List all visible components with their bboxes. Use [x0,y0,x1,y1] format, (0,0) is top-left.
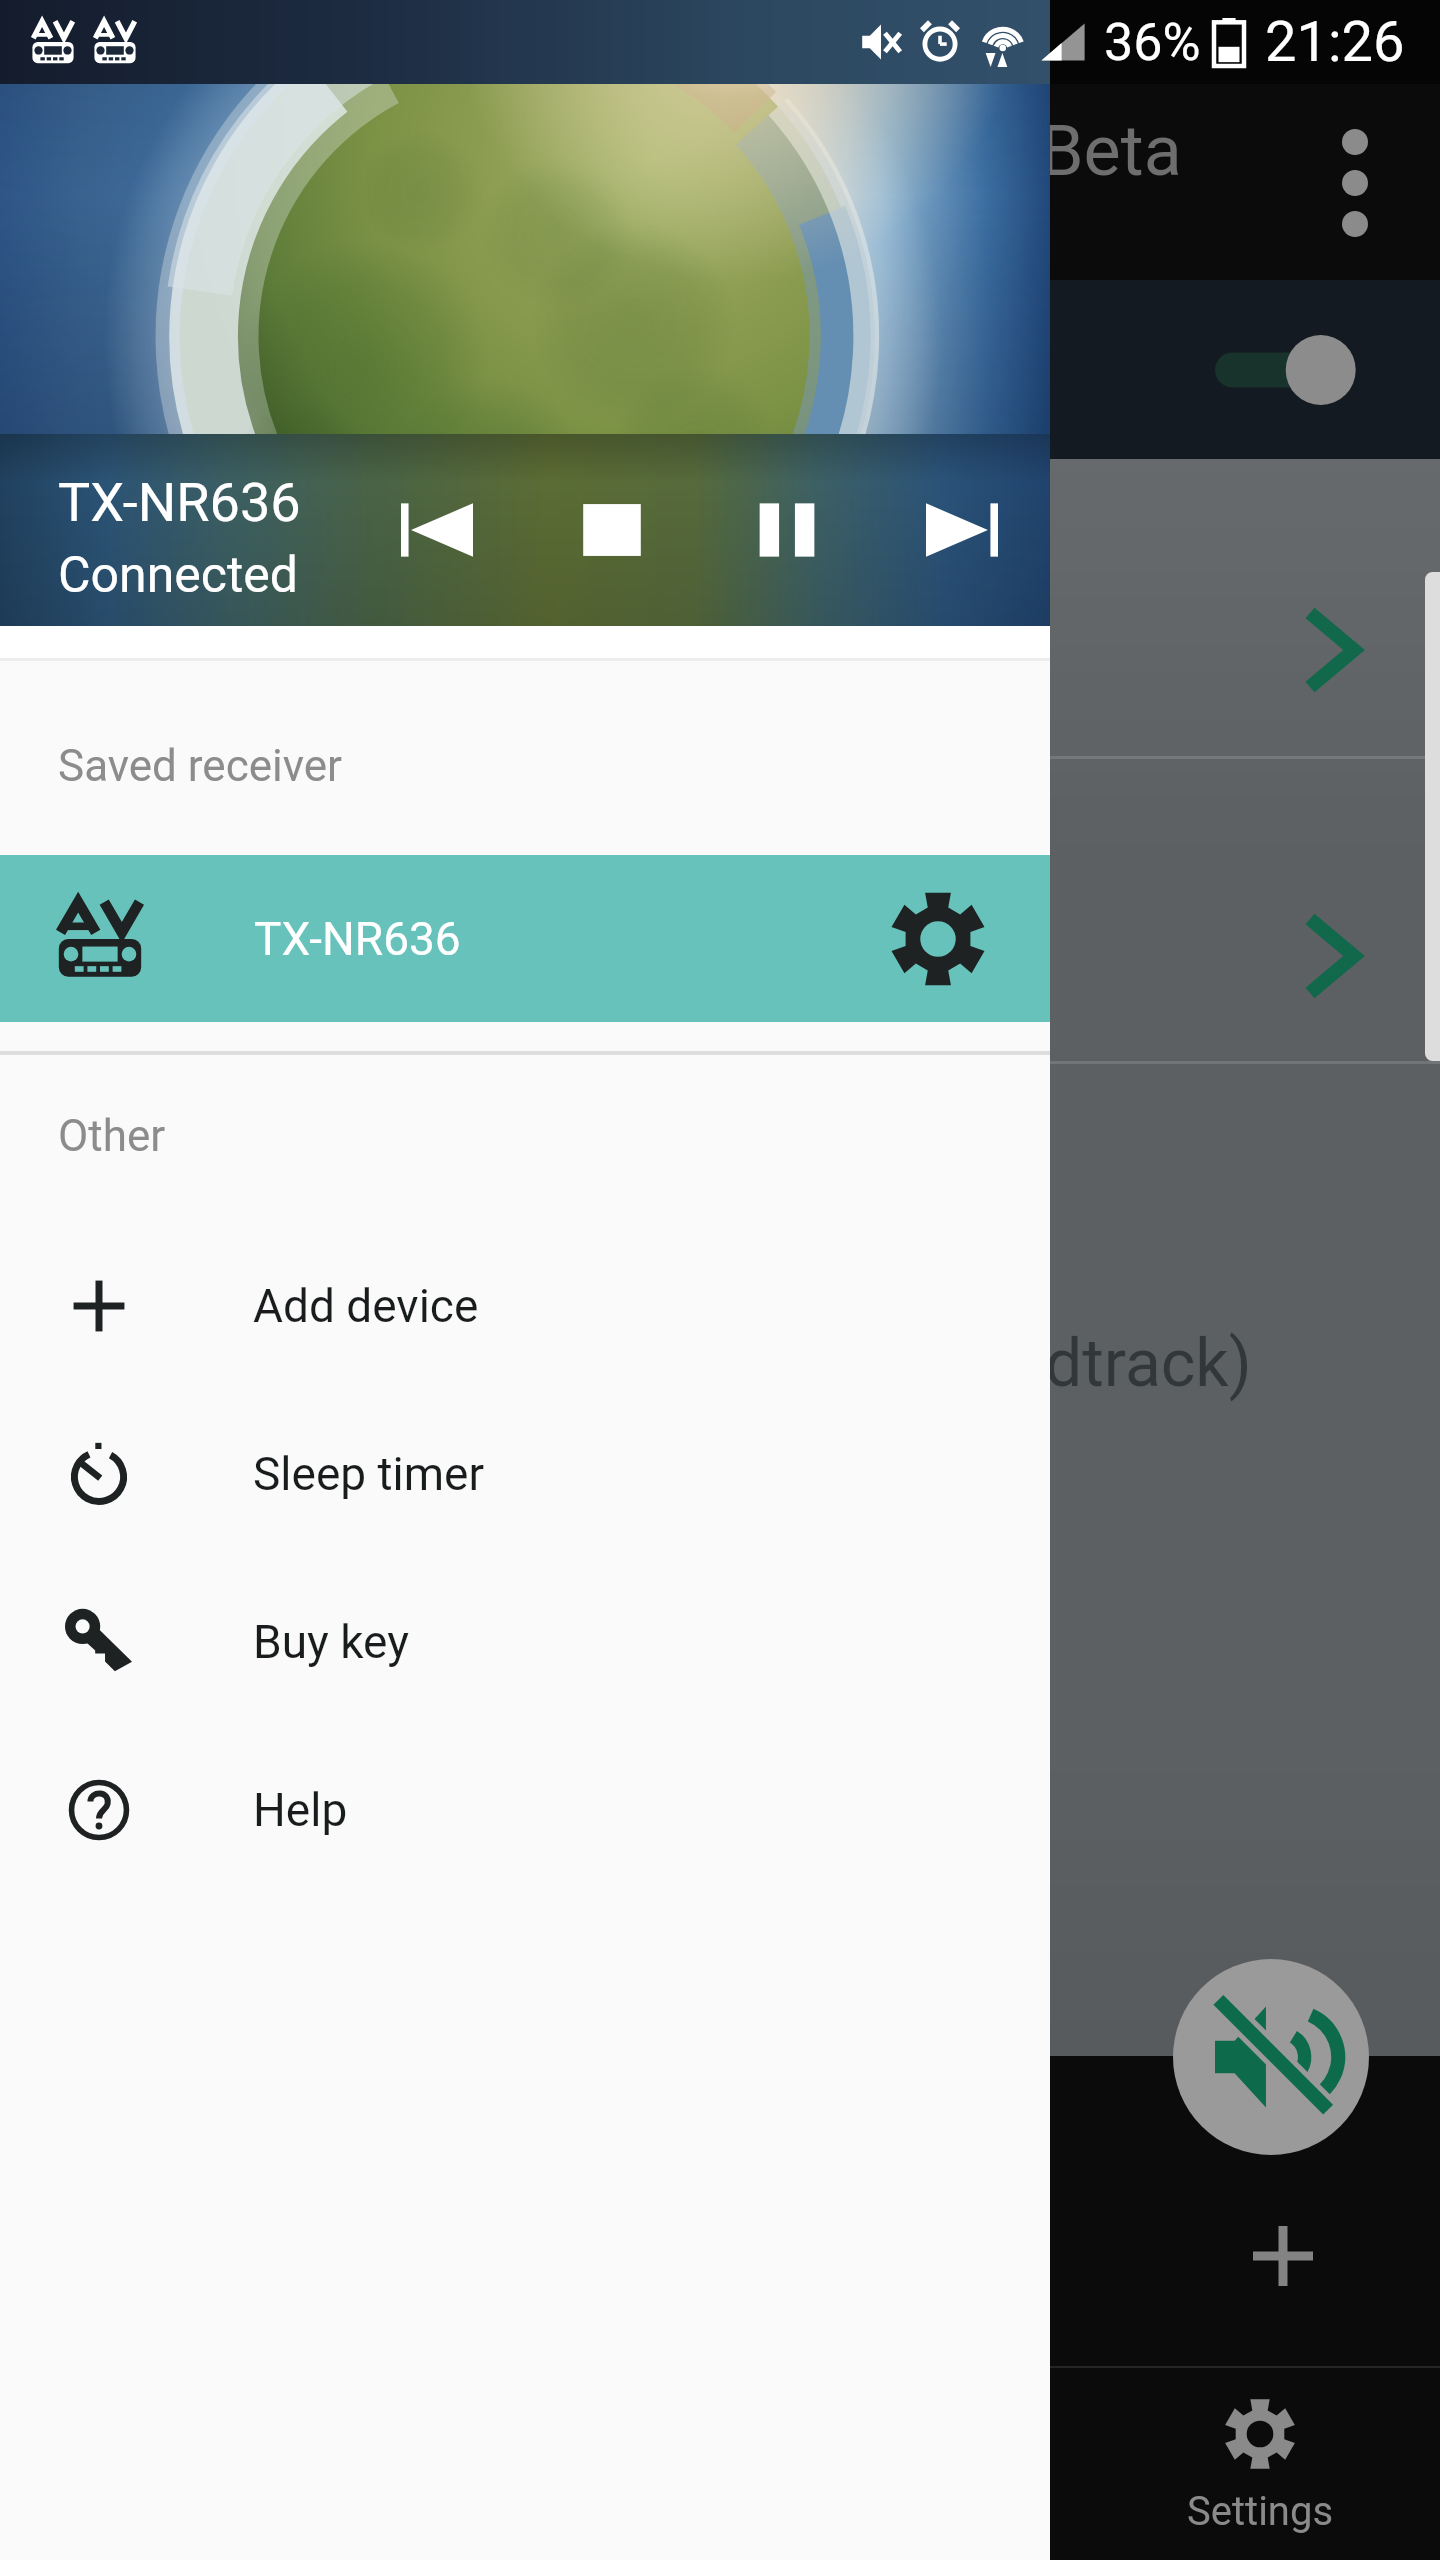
staticText: Other [58,1110,166,1162]
button[interactable]: Mute [1173,1959,1369,2155]
staticText: dtrack) [1045,1325,1252,1402]
staticText: 21:26 [1265,9,1405,75]
staticText: TX-NR636 [58,471,301,534]
button[interactable]: Settings [1145,2398,1375,2535]
staticText: Connected [58,546,299,605]
button[interactable]: Buy key [0,1558,1050,1726]
button[interactable]: Pause [735,478,839,582]
button[interactable]: Help [0,1726,1050,1894]
staticText: Settings [1187,2488,1334,2535]
button[interactable]: TX-NR636 [0,855,1050,1022]
staticText: Help [253,1783,348,1837]
button[interactable]: Sleep timer [0,1390,1050,1558]
button[interactable]: Previous [385,478,489,582]
button[interactable]: Next [910,478,1014,582]
button[interactable]: Settings [868,869,1008,1009]
staticText: Add device [253,1279,479,1333]
button[interactable]: Add device [0,1222,1050,1390]
staticText: 36% [1104,12,1201,73]
staticText: Beta [1040,110,1182,192]
staticText: Saved receiver [58,740,343,792]
button[interactable]: Stop [560,478,664,582]
staticText: Sleep timer [253,1447,485,1501]
button[interactable]: Add [1228,2201,1338,2311]
button[interactable]: More options [1300,128,1410,238]
staticText: Buy key [253,1615,409,1669]
staticText: TX-NR636 [254,912,461,966]
